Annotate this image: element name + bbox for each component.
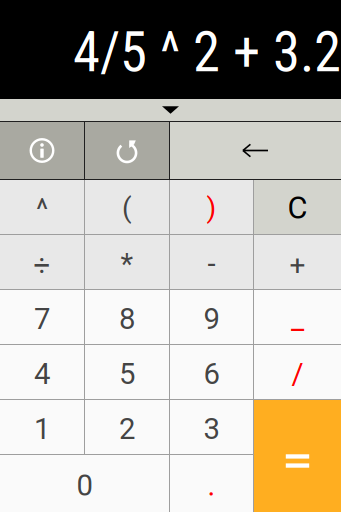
button[interactable]: . <box>170 455 253 512</box>
button[interactable]: ) <box>170 180 253 234</box>
button[interactable]: ( <box>85 180 169 234</box>
staticText: 6 <box>203 357 219 391</box>
button[interactable]: 9 <box>170 290 253 344</box>
button[interactable]: Info <box>0 122 84 179</box>
button[interactable]: 2 <box>85 400 169 454</box>
staticText: _ <box>291 302 304 336</box>
button[interactable]: Backspace <box>170 122 341 179</box>
staticText: + <box>289 249 305 281</box>
staticText: 4/5 ^ 2 + 3.2 <box>73 20 341 85</box>
button[interactable]: _ <box>254 290 341 344</box>
button[interactable]: Undo <box>85 122 169 179</box>
staticText: * <box>120 247 133 281</box>
staticText: ÷ <box>33 249 50 283</box>
button[interactable]: Equals <box>254 400 341 512</box>
staticText: 2 <box>119 412 135 446</box>
staticText: ( <box>122 192 132 224</box>
button[interactable]: - <box>170 235 253 289</box>
staticText: 7 <box>34 302 50 336</box>
button[interactable]: * <box>85 235 169 289</box>
button[interactable]: 0 <box>0 455 169 512</box>
button[interactable]: 1 <box>0 400 84 454</box>
staticText: C <box>287 190 307 226</box>
staticText: 5 <box>119 357 135 391</box>
button[interactable]: / <box>254 345 341 399</box>
button[interactable]: 8 <box>85 290 169 344</box>
staticText: 9 <box>203 302 219 336</box>
staticText: ^ <box>36 193 48 227</box>
button[interactable]: 7 <box>0 290 84 344</box>
button[interactable]: 6 <box>170 345 253 399</box>
staticText: 8 <box>119 302 135 336</box>
button[interactable]: 4 <box>0 345 84 399</box>
button[interactable]: C <box>254 180 341 234</box>
button[interactable]: 3 <box>170 400 253 454</box>
button[interactable]: 5 <box>85 345 169 399</box>
staticText: 0 <box>76 468 92 503</box>
staticText: 3 <box>203 412 219 446</box>
button[interactable]: ÷ <box>0 235 84 289</box>
button[interactable]: + <box>254 235 341 289</box>
staticText: 1 <box>34 412 50 446</box>
staticText: . <box>207 468 215 503</box>
staticText: ) <box>206 192 216 224</box>
button[interactable]: ^ <box>0 180 84 234</box>
staticText: - <box>207 247 215 281</box>
staticText: 4 <box>34 357 50 391</box>
staticText: / <box>291 357 303 391</box>
